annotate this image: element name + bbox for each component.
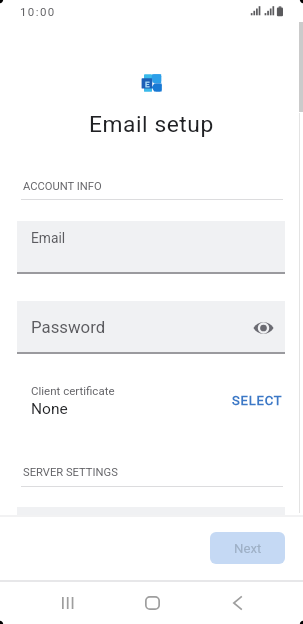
staticText: 10:00	[20, 5, 56, 18]
button[interactable]: Password	[17, 301, 285, 353]
button[interactable]: SELECT	[220, 386, 294, 414]
staticText: Next	[234, 541, 262, 556]
other: Show password	[253, 320, 274, 336]
staticText: Email	[31, 230, 66, 246]
staticText: SELECT	[232, 393, 283, 408]
button[interactable]: Email	[17, 221, 285, 273]
button[interactable]: Home	[137, 586, 168, 620]
staticText: Password	[31, 317, 106, 337]
button[interactable]: Next	[210, 532, 285, 564]
staticText: ACCOUNT INFO	[23, 180, 102, 193]
staticText: Email setup	[89, 111, 214, 138]
button[interactable]: Back	[222, 586, 253, 620]
staticText: None	[31, 400, 68, 418]
staticText: SERVER SETTINGS	[23, 466, 118, 479]
staticText: E	[145, 80, 150, 89]
button[interactable]: Recent apps	[52, 586, 83, 620]
staticText: Client certificate	[31, 384, 115, 397]
